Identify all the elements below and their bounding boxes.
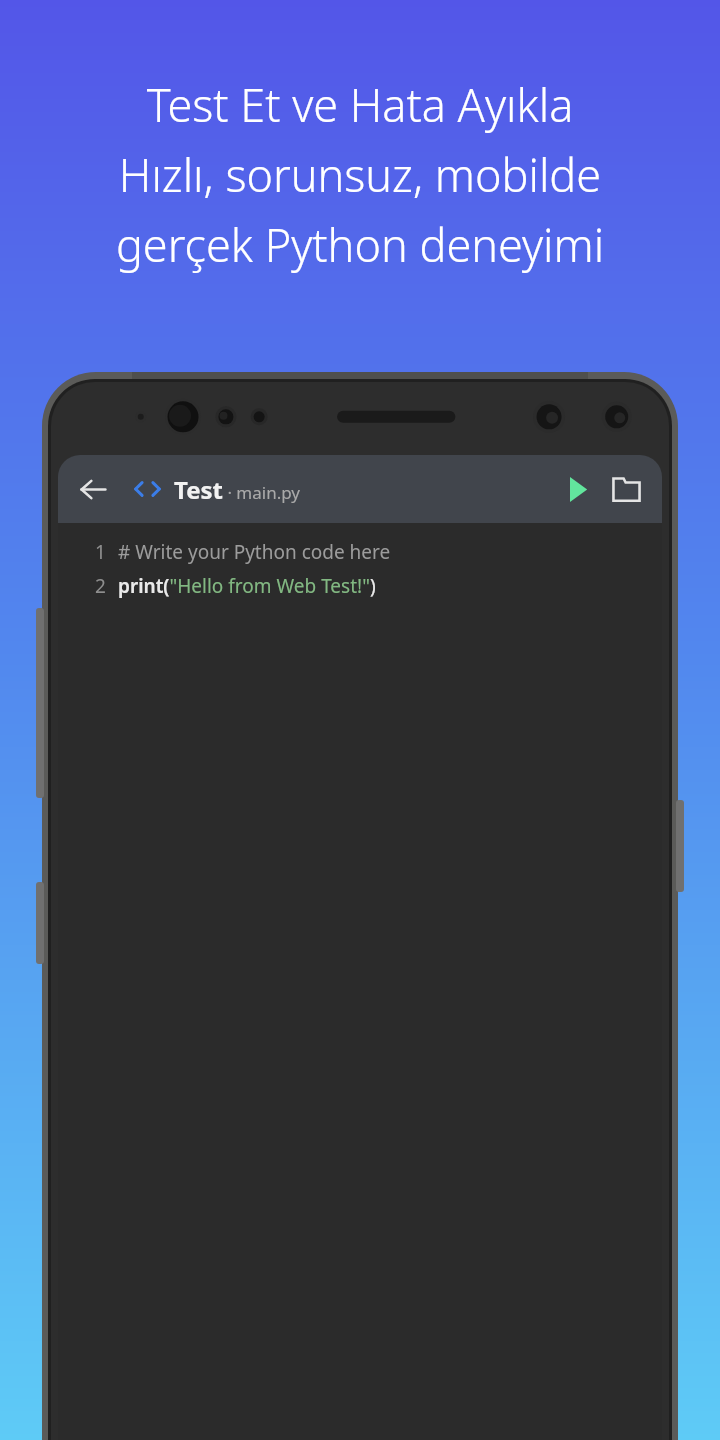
button[interactable]: Back (70, 466, 116, 512)
staticText: print("Hello from Web Test!") (118, 573, 376, 599)
staticText: Test Et ve Hata Ayıkla Hızlı, sorunsuz, … (20, 74, 700, 275)
staticText: 2 (95, 573, 106, 599)
button[interactable]: Run (556, 467, 600, 511)
staticText: Test · main.py (174, 473, 301, 506)
staticText: 1 (95, 539, 106, 565)
button[interactable]: Open files (604, 467, 648, 511)
staticText: # Write your Python code here (118, 539, 391, 565)
